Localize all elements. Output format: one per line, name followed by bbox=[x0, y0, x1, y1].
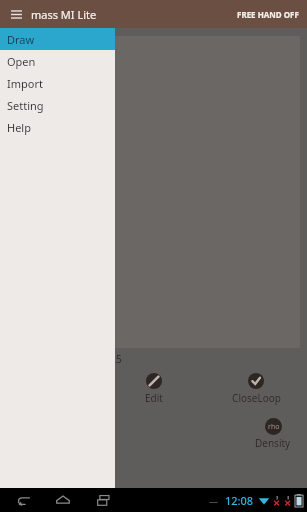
button[interactable]: Open bbox=[0, 50, 115, 72]
staticText: n dS: 0.2 D:1.0 rho:0.25 bbox=[6, 352, 122, 366]
staticText: Density bbox=[255, 436, 291, 450]
staticText: Help bbox=[7, 120, 31, 135]
button[interactable]: Recent apps bbox=[91, 488, 115, 512]
button[interactable]: rho bbox=[255, 418, 291, 450]
staticText: Setting bbox=[7, 98, 44, 113]
button[interactable]: Help bbox=[0, 116, 115, 138]
staticText: Open bbox=[7, 54, 36, 69]
staticText: — bbox=[209, 495, 219, 507]
button[interactable]: Home bbox=[51, 488, 75, 512]
staticText: Import bbox=[7, 76, 43, 91]
staticText: FREE HAND OFF bbox=[237, 9, 299, 20]
button[interactable]: CloseLoop bbox=[205, 371, 307, 405]
button[interactable]: Import bbox=[0, 72, 115, 94]
button[interactable]: Back bbox=[11, 488, 35, 512]
staticText: 12:08 bbox=[225, 493, 254, 508]
button[interactable]: Edit bbox=[103, 371, 205, 405]
button[interactable]: Open navigation drawer bbox=[4, 2, 28, 26]
button[interactable]: Draw bbox=[0, 28, 115, 50]
staticText: Draw bbox=[7, 32, 35, 47]
button[interactable]: Setting bbox=[0, 94, 115, 116]
staticText: mass MI Lite bbox=[31, 7, 97, 22]
staticText: rho bbox=[268, 422, 280, 432]
staticText: Edit bbox=[145, 391, 163, 405]
staticText: CloseLoop bbox=[232, 391, 281, 405]
button[interactable]: FREE HAND OFF bbox=[229, 3, 307, 26]
